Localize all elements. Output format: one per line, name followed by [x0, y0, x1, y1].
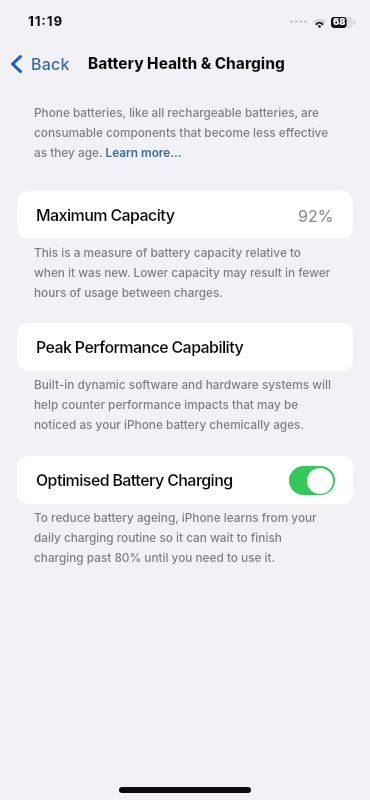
staticText: To reduce battery ageing, iPhone learns … — [34, 511, 326, 565]
button[interactable]: Peak Performance Capability — [17, 323, 353, 371]
staticText: 92% — [298, 206, 334, 225]
staticText: Maximum Capacity — [36, 206, 175, 225]
staticText: Back — [31, 54, 70, 73]
staticText: 11:19 — [28, 13, 64, 29]
button[interactable]: Optimised Battery Charging, on — [289, 466, 335, 495]
staticText: This is a measure of battery capacity re… — [34, 246, 335, 300]
staticText: Built-in dynamic software and hardware s… — [34, 378, 336, 432]
staticText: Phone batteries, like all rechargeable b… — [34, 106, 336, 160]
staticText: 68 — [333, 16, 346, 28]
button[interactable]: Back — [6, 52, 77, 75]
button[interactable]: Maximum Capacity — [17, 191, 353, 239]
staticText: Peak Performance Capability — [36, 338, 244, 357]
staticText: Battery Health & Charging — [88, 54, 285, 73]
staticText: Optimised Battery Charging — [36, 471, 233, 490]
